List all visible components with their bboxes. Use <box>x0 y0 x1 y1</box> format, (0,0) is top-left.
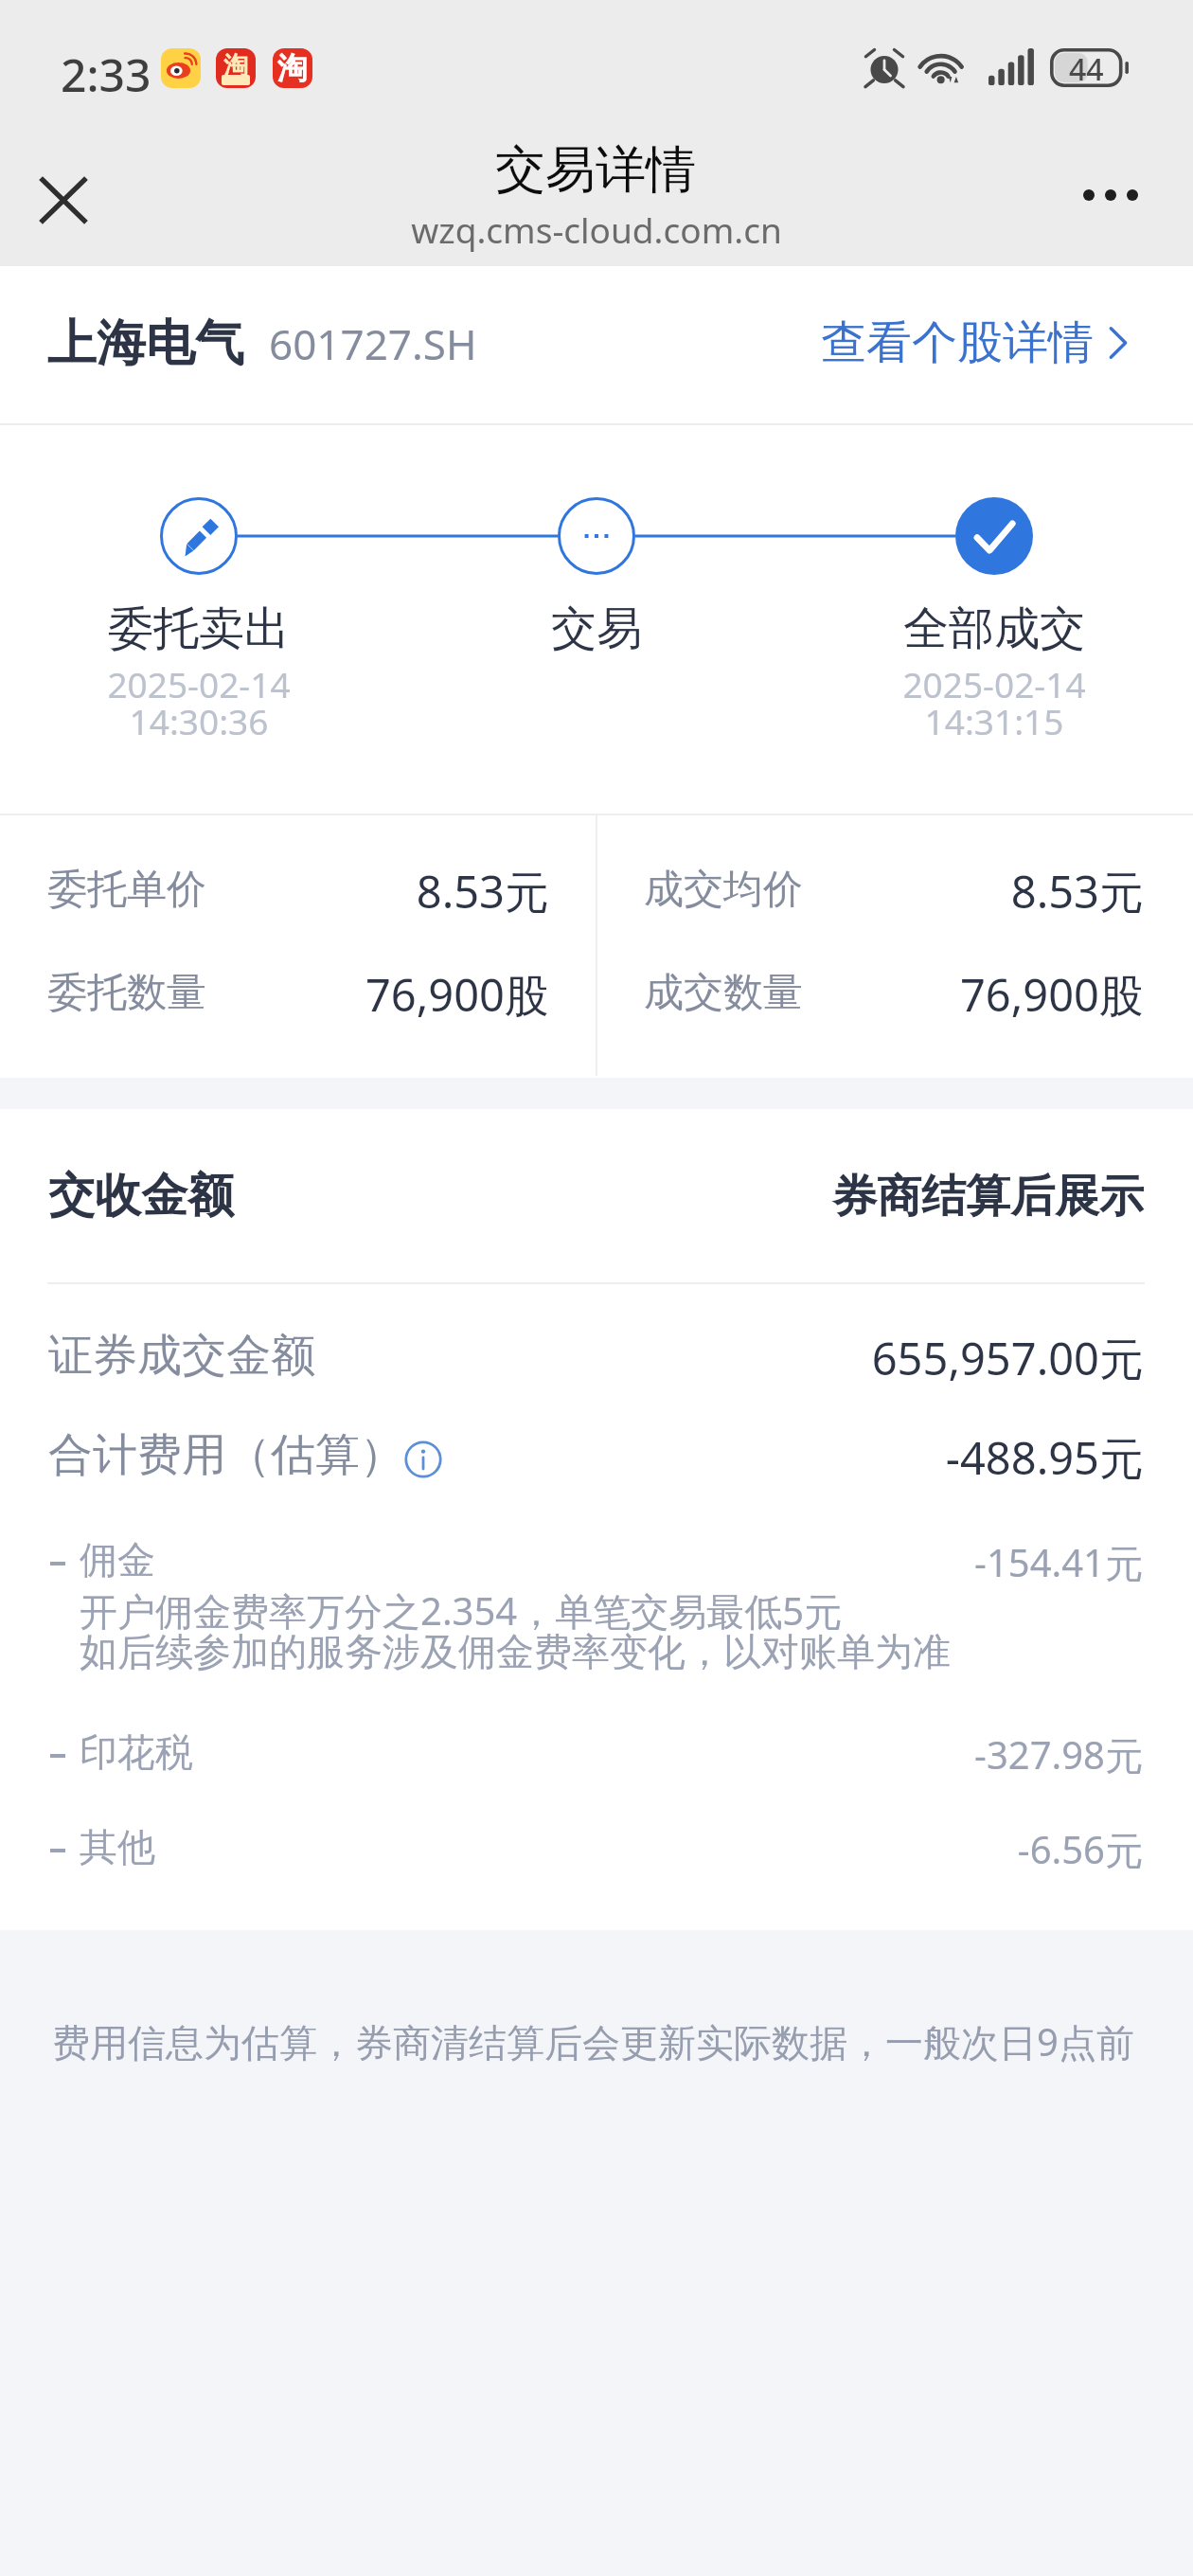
button[interactable]: Fee information <box>403 1440 443 1479</box>
staticText: 2025-02-14 14:31:15 <box>615 660 1193 745</box>
staticText: 委托数量 <box>47 968 206 1018</box>
staticText: 委托单价 <box>47 865 206 915</box>
staticText: -488.95元 <box>292 1427 1144 1488</box>
staticText: 655,957.00元 <box>292 1328 1144 1388</box>
staticText: 如后续参加的服务涉及佣金费率变化，以对账单为准 <box>80 1628 951 1675</box>
staticText: 佣金 <box>80 1536 155 1583</box>
staticText: 2025-02-14 14:30:36 <box>0 660 578 745</box>
staticText: 601727.SH <box>269 315 477 372</box>
staticText: -154.41元 <box>291 1536 1143 1588</box>
staticText: 开户佣金费率万分之2.354，单笔交易最低5元 <box>80 1584 843 1637</box>
staticText: 合计费用（估算） <box>48 1427 404 1483</box>
staticText: -6.56元 <box>291 1823 1143 1875</box>
button[interactable]: 查看个股详情 <box>815 303 1135 383</box>
staticText: 8.53元 <box>292 861 1144 921</box>
staticText: 交收金额 <box>48 1167 234 1225</box>
staticText: 交易详情 <box>217 138 974 202</box>
staticText: 上海电气 <box>47 313 244 375</box>
staticText: 查看个股详情 <box>821 314 1094 371</box>
staticText: 8.53元 <box>0 861 549 921</box>
staticText: 交易 <box>218 600 975 657</box>
staticText: 76,900股 <box>292 964 1144 1025</box>
staticText: 2:33 <box>61 44 151 105</box>
staticText: wzq.cms-cloud.com.cn <box>218 206 975 253</box>
staticText: 委托卖出 <box>0 600 578 657</box>
staticText: 印花税 <box>80 1728 193 1776</box>
button[interactable]: More options <box>1042 148 1136 242</box>
button[interactable]: Close <box>12 148 107 242</box>
staticText: 证券成交金额 <box>48 1328 315 1384</box>
staticText: 44 <box>1069 48 1104 87</box>
staticText: 淘 <box>223 50 248 81</box>
staticText: 淘 <box>277 49 308 87</box>
button[interactable] <box>0 266 1193 424</box>
staticText: 成交数量 <box>644 968 803 1018</box>
staticText: 券商结算后展示 <box>292 1169 1144 1225</box>
staticText: 全部成交 <box>615 600 1193 657</box>
staticText: 其他 <box>80 1823 155 1870</box>
staticText: 费用信息为估算，券商清结算后会更新实际数据，一般次日9点前 <box>52 2015 1134 2067</box>
staticText: -327.98元 <box>291 1728 1143 1780</box>
staticText: 76,900股 <box>0 964 549 1025</box>
staticText: 成交均价 <box>644 865 803 915</box>
